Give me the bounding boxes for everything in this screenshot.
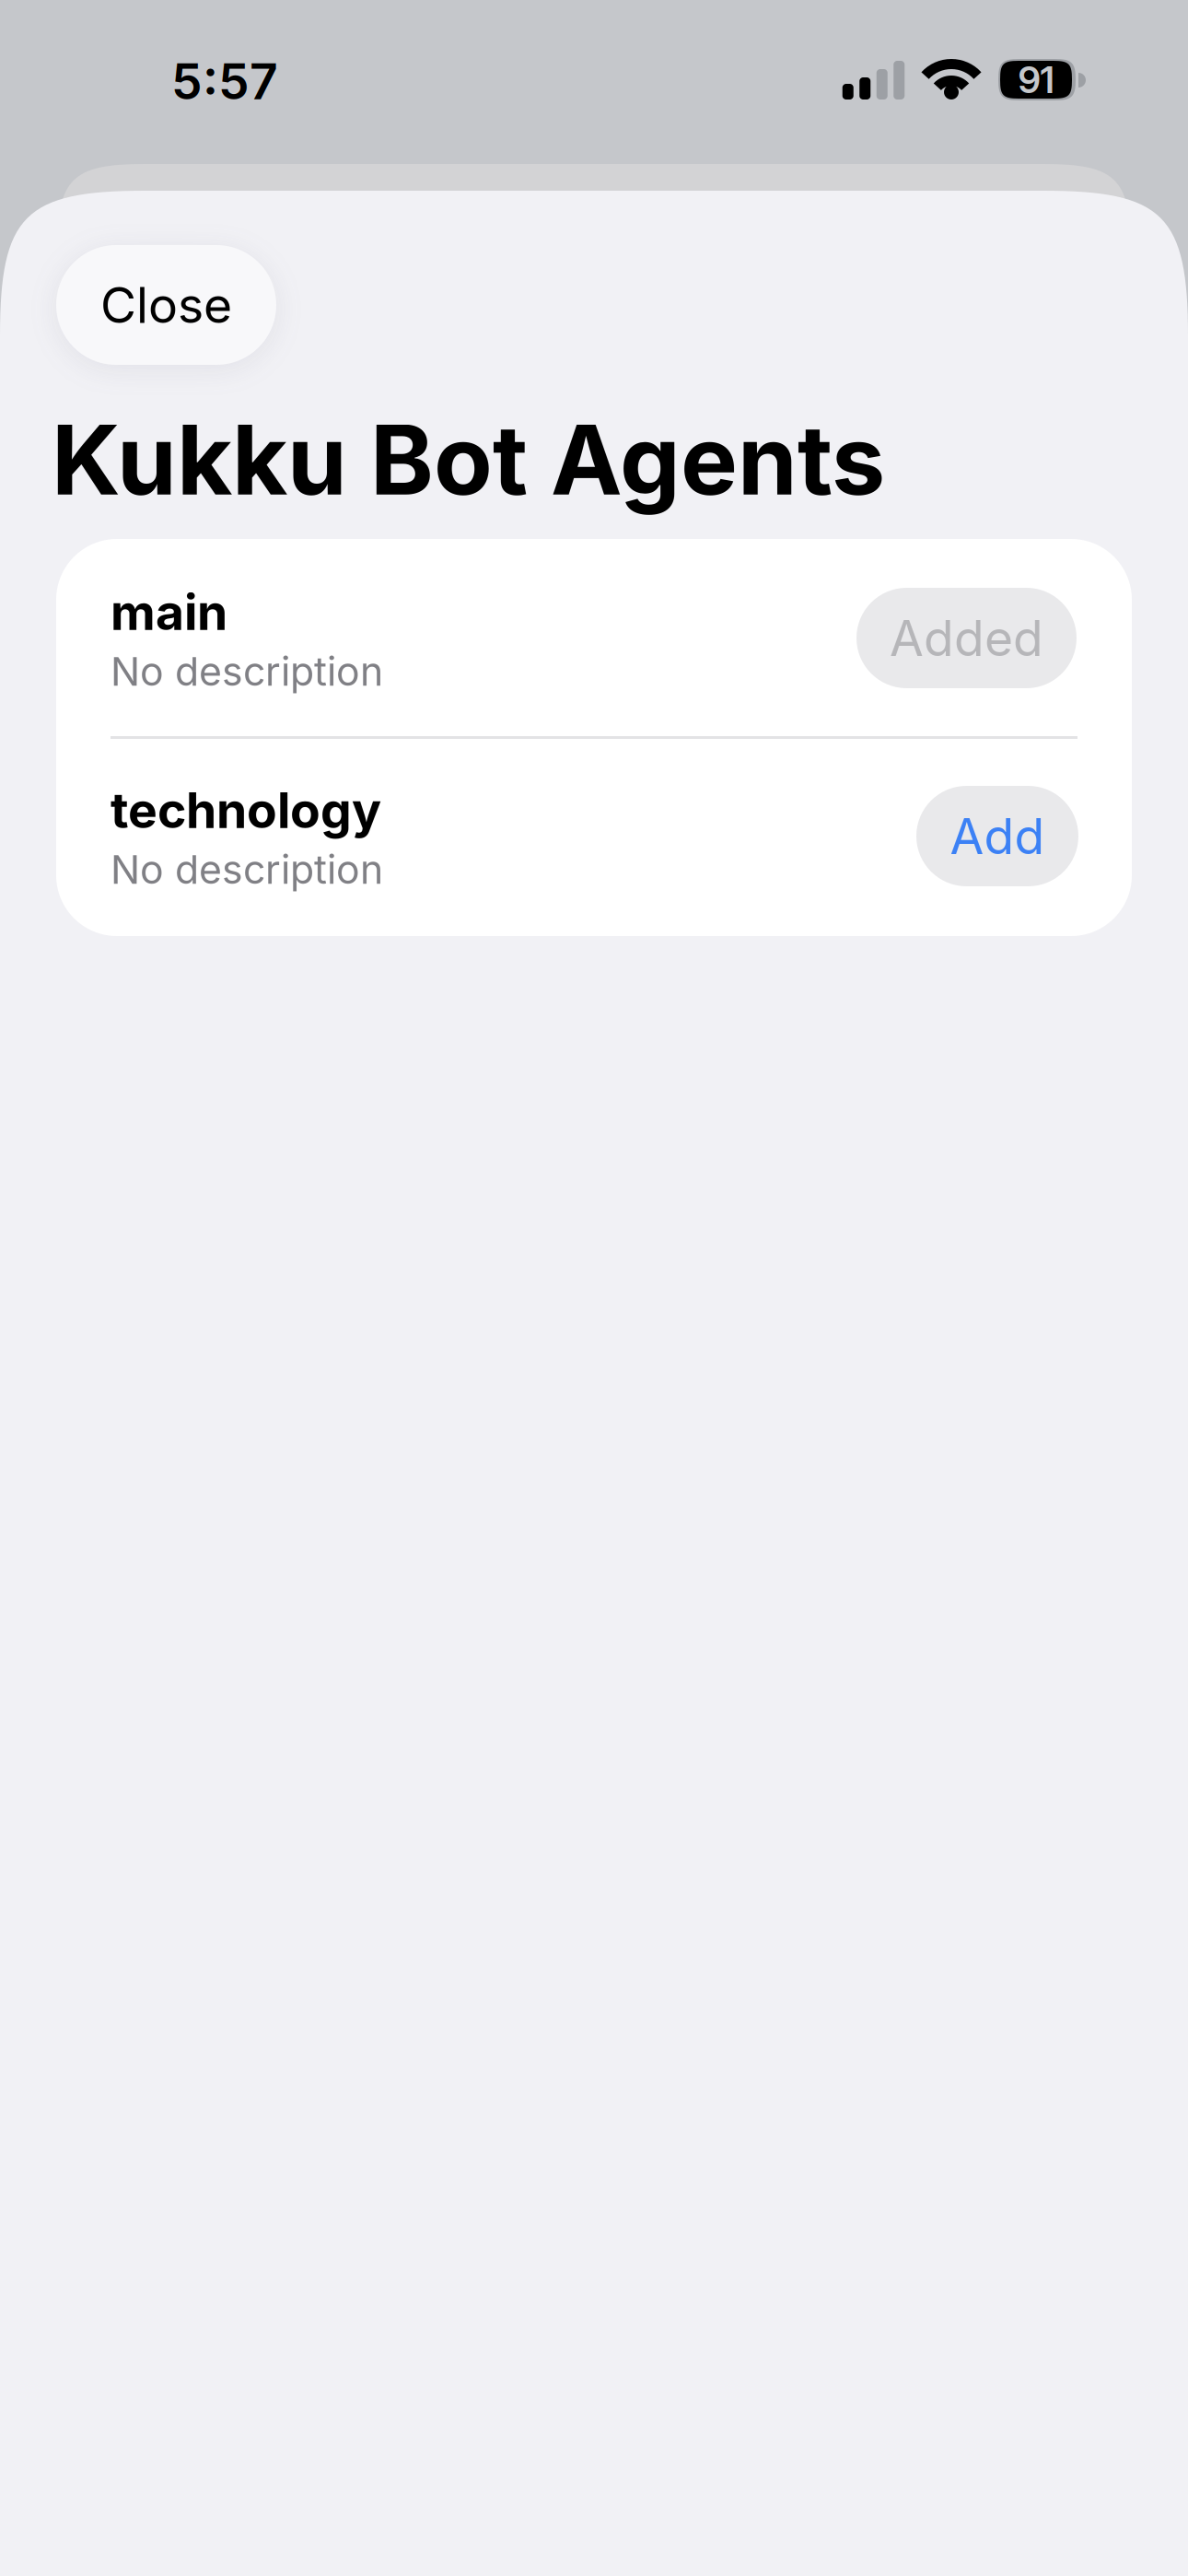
staticText: Kukku Bot Agents xyxy=(52,402,885,518)
staticText: No description xyxy=(111,846,383,893)
button[interactable]: Add xyxy=(916,786,1078,886)
staticText: No description xyxy=(111,648,383,695)
button[interactable]: Added xyxy=(856,588,1077,688)
staticText: 91 xyxy=(1018,57,1054,102)
staticText: 5:57 xyxy=(171,52,278,111)
staticText: technology xyxy=(111,780,381,840)
staticText: Add xyxy=(950,806,1045,866)
staticText: main xyxy=(111,582,227,642)
staticText: Added xyxy=(890,608,1043,668)
staticText: Close xyxy=(100,275,232,335)
button[interactable]: Close xyxy=(56,245,276,365)
